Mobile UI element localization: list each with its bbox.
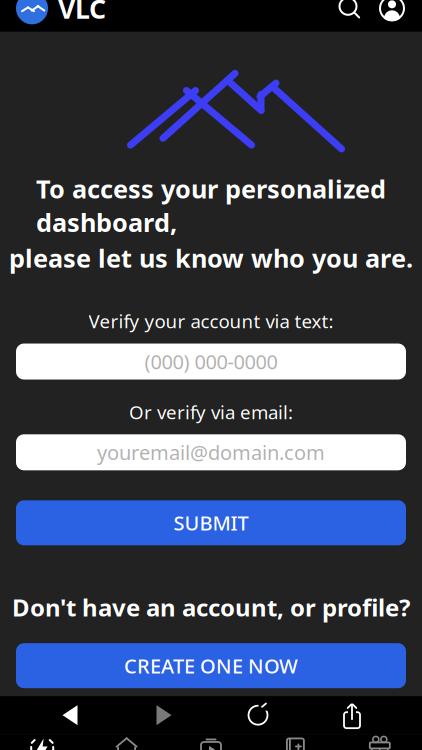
button[interactable]: Grow xyxy=(0,731,84,750)
staticText: youremail@domain.com xyxy=(97,439,325,466)
button[interactable]: Search xyxy=(330,0,370,28)
button[interactable]: Forward xyxy=(140,698,188,732)
button[interactable]: Church xyxy=(84,731,169,750)
button[interactable]: Bible xyxy=(253,731,338,750)
staticText: please let us know who you are. xyxy=(9,241,413,275)
staticText: Or verify via email: xyxy=(129,399,293,424)
button[interactable]: Share xyxy=(328,698,376,732)
button[interactable]: Give xyxy=(338,730,422,750)
button[interactable]: Back xyxy=(46,698,94,732)
button[interactable]: Reload xyxy=(234,698,282,732)
button[interactable]: Account xyxy=(370,0,414,28)
button[interactable]: CREATE ONE NOW xyxy=(16,643,406,688)
staticText: To access your personalized dashboard, xyxy=(36,172,386,239)
staticText: SUBMIT xyxy=(173,509,248,536)
staticText: (000) 000-0000 xyxy=(144,348,277,375)
staticText: Verify your account via text: xyxy=(88,309,333,333)
button[interactable]: Watch xyxy=(169,731,253,750)
button[interactable]: VLC xyxy=(0,0,106,32)
staticText: VLC xyxy=(58,0,106,26)
button[interactable]: (000) 000-0000 xyxy=(16,343,406,379)
staticText: CREATE ONE NOW xyxy=(124,652,298,679)
button[interactable]: SUBMIT xyxy=(16,500,406,545)
button[interactable]: youremail@domain.com xyxy=(16,434,406,470)
staticText: Don't have an account, or profile? xyxy=(12,591,410,623)
